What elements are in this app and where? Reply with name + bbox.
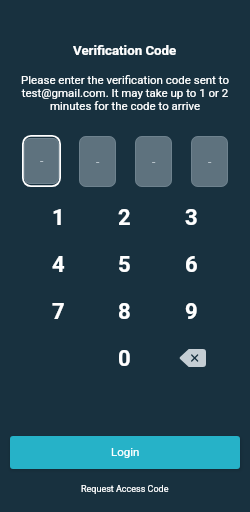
- staticText: 9: [185, 299, 198, 325]
- staticText: 6: [185, 252, 198, 278]
- staticText: Verification Code: [73, 43, 177, 59]
- button[interactable]: 5: [91, 241, 158, 288]
- button[interactable]: 4: [25, 241, 91, 288]
- staticText: Login: [111, 445, 140, 458]
- staticText: 4: [52, 252, 65, 278]
- staticText: -: [40, 154, 44, 168]
- button[interactable]: -: [190, 135, 229, 187]
- button[interactable]: 2: [91, 194, 158, 241]
- button[interactable]: 1: [25, 194, 91, 241]
- button[interactable]: 6: [158, 241, 225, 288]
- staticText: 8: [118, 299, 131, 325]
- staticText: -: [96, 155, 100, 169]
- staticText: Request Access Code: [81, 484, 169, 495]
- button[interactable]: Request Access Code: [73, 482, 177, 497]
- button[interactable]: -: [78, 135, 117, 187]
- staticText: 3: [185, 205, 198, 231]
- staticText: 0: [118, 346, 131, 372]
- button[interactable]: Backspace: [158, 335, 225, 382]
- button[interactable]: -: [134, 135, 173, 187]
- button[interactable]: 0: [91, 335, 158, 382]
- button[interactable]: 7: [25, 288, 91, 335]
- staticText: -: [152, 155, 156, 169]
- button[interactable]: Login: [10, 436, 240, 469]
- button[interactable]: 9: [158, 288, 225, 335]
- button[interactable]: 8: [91, 288, 158, 335]
- staticText: 7: [52, 299, 65, 325]
- button[interactable]: 3: [158, 194, 225, 241]
- staticText: Please enter the verification code sent …: [8, 73, 242, 112]
- staticText: 5: [118, 252, 131, 278]
- staticText: -: [208, 155, 212, 169]
- other: Backspace: [179, 349, 206, 367]
- staticText: 1: [52, 205, 65, 231]
- button[interactable]: -: [22, 135, 61, 187]
- staticText: 2: [118, 205, 131, 231]
